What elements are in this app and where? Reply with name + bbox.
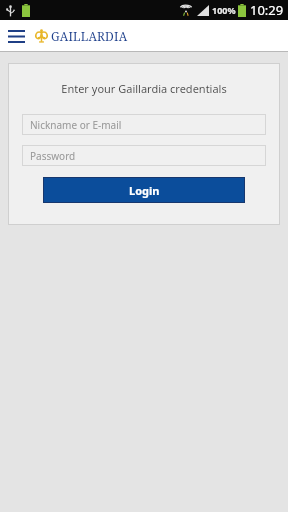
- staticText: 10:29: [250, 1, 284, 19]
- staticText: Nickname or E-mail: [30, 118, 122, 132]
- staticText: GAILLARDIA: [51, 28, 128, 44]
- staticText: Password: [30, 149, 76, 163]
- staticText: 100%: [212, 4, 236, 16]
- button[interactable]: Open navigation menu: [3, 23, 29, 49]
- button[interactable]: Nickname or E-mail: [22, 114, 266, 135]
- staticText: Login: [129, 183, 160, 198]
- button[interactable]: Login: [43, 177, 245, 203]
- button[interactable]: Password: [22, 145, 266, 166]
- staticText: Enter your Gaillardia credentials: [22, 81, 266, 96]
